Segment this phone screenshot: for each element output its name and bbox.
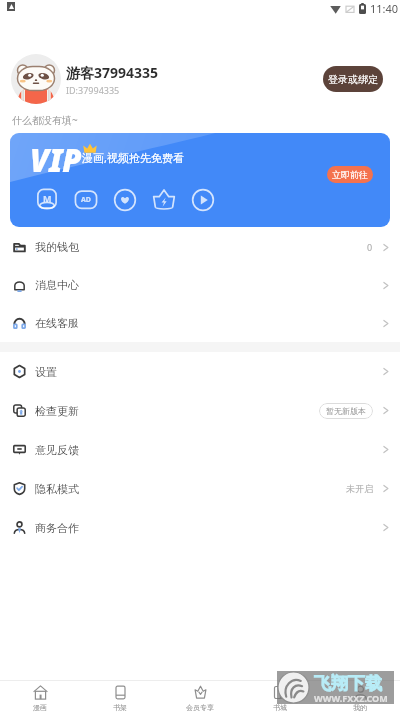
button[interactable]: 隐私模式 [0, 469, 400, 508]
staticText: 会员专享 [186, 703, 214, 712]
staticText: 11:40 [370, 1, 399, 16]
button[interactable]: VIP feature 1 [74, 188, 98, 212]
staticText: WWW.FXXZ.COM [314, 692, 388, 704]
button[interactable]: 意见反馈 [0, 430, 400, 469]
staticText: 书架 [113, 703, 127, 712]
button[interactable]: 消息中心 [0, 266, 400, 304]
button[interactable]: 我的钱包 [0, 228, 400, 266]
staticText: 在线客服 [35, 316, 79, 330]
button[interactable]: 我的 [320, 681, 400, 715]
button[interactable]: 书城 [240, 681, 320, 715]
staticText: 立即前往 [332, 169, 368, 180]
button[interactable]: 商务合作 [0, 508, 400, 547]
staticText: 消息中心 [35, 278, 79, 292]
button[interactable]: VIP feature 3 [152, 188, 176, 212]
button[interactable]: 漫画 [0, 681, 80, 715]
staticText: 漫画,视频抢先免费看 [82, 150, 184, 165]
staticText: 设置 [35, 365, 57, 379]
staticText: 检查更新 [35, 404, 79, 418]
staticText: 我的 [353, 703, 367, 712]
button[interactable]: 在线客服 [0, 304, 400, 342]
button[interactable]: 会员专享 [160, 681, 240, 715]
button[interactable]: Avatar [11, 54, 61, 104]
button[interactable]: VIP feature 0 [35, 188, 59, 212]
staticText: M [43, 192, 52, 204]
staticText: 漫画 [33, 703, 47, 712]
staticText: 游客37994335 [66, 63, 159, 82]
button[interactable]: VIP feature 2 [113, 188, 137, 212]
staticText: 什么都没有填~ [12, 113, 78, 127]
button[interactable]: 检查更新 [0, 391, 400, 430]
staticText: 商务合作 [35, 521, 79, 535]
button[interactable]: 书架 [80, 681, 160, 715]
staticText: AD [81, 195, 91, 205]
staticText: 意见反馈 [35, 443, 79, 457]
staticText: 我的钱包 [35, 240, 79, 254]
staticText: 书城 [273, 703, 287, 712]
staticText: VIP [30, 139, 82, 181]
button[interactable]: 登录或绑定 [323, 66, 383, 92]
staticText: 0 [367, 241, 373, 253]
staticText: 飞翔下载 [314, 673, 382, 694]
button[interactable]: VIP [10, 133, 390, 227]
button[interactable]: 设置 [0, 352, 400, 391]
button[interactable]: 立即前往 [327, 166, 373, 183]
staticText: ID:37994335 [66, 84, 120, 96]
staticText: 隐私模式 [35, 482, 79, 496]
staticText: 未开启 [346, 483, 373, 494]
staticText: 暂无新版本 [326, 406, 366, 416]
button[interactable]: VIP feature 4 [191, 188, 215, 212]
staticText: 登录或绑定 [328, 73, 378, 86]
